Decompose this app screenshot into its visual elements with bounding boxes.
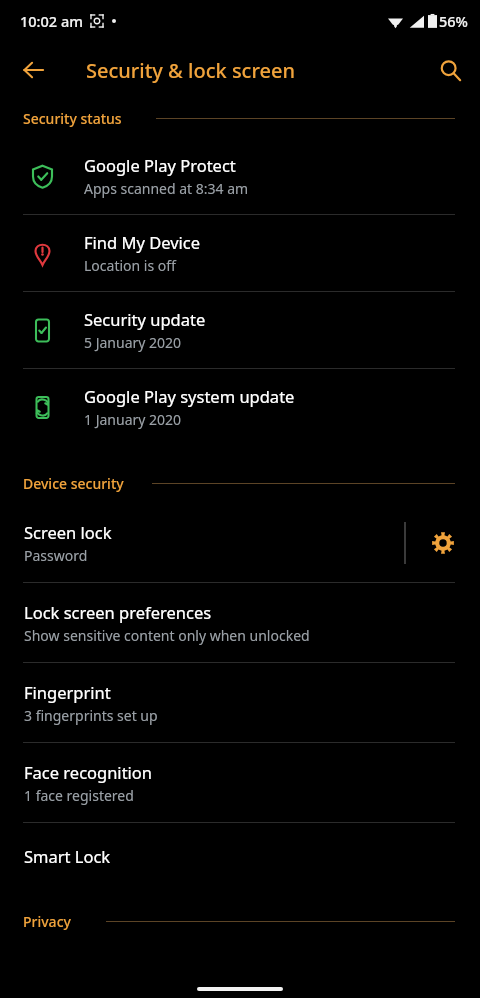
staticText: Apps scanned at 8:34 am — [84, 179, 249, 198]
staticText: Location is off — [84, 256, 176, 275]
staticText: Security & lock screen — [86, 57, 295, 84]
staticText: Security status — [23, 109, 122, 128]
staticText: Screen lock — [24, 521, 112, 543]
button[interactable]: Smart Lock — [0, 845, 480, 867]
staticText: Show sensitive content only when unlocke… — [24, 626, 310, 645]
staticText: Google Play Protect — [84, 154, 236, 176]
staticText: Smart Lock — [24, 845, 111, 867]
staticText: Password — [24, 546, 88, 565]
button[interactable]: Google Play Protect — [0, 138, 480, 214]
staticText: Security update — [84, 308, 206, 330]
staticText: Fingerprint — [24, 681, 111, 703]
staticText: 10:02 am — [20, 11, 83, 31]
staticText: Find My Device — [84, 231, 201, 253]
staticText: 3 fingerprints set up — [24, 706, 158, 725]
button[interactable]: Screen lock — [0, 521, 404, 565]
staticText: 1 January 2020 — [84, 410, 182, 429]
staticText: Face recognition — [24, 761, 153, 783]
staticText: Privacy — [23, 912, 71, 931]
button[interactable]: Screen lock settings — [406, 511, 480, 575]
staticText: 56% — [439, 11, 468, 31]
button[interactable]: Lock screen preferences — [0, 601, 480, 645]
staticText: Lock screen preferences — [24, 601, 212, 623]
staticText: 5 January 2020 — [84, 333, 182, 352]
staticText: 1 face registered — [24, 786, 134, 805]
button[interactable]: Security update — [0, 292, 480, 368]
staticText: Device security — [23, 474, 124, 493]
button[interactable]: Fingerprint — [0, 681, 480, 725]
staticText: Google Play system update — [84, 385, 295, 407]
button[interactable]: Face recognition — [0, 761, 480, 805]
button[interactable]: Google Play system update — [0, 369, 480, 445]
button[interactable]: Back — [10, 46, 58, 94]
button[interactable]: Find My Device — [0, 215, 480, 291]
button[interactable]: Search — [426, 46, 474, 94]
